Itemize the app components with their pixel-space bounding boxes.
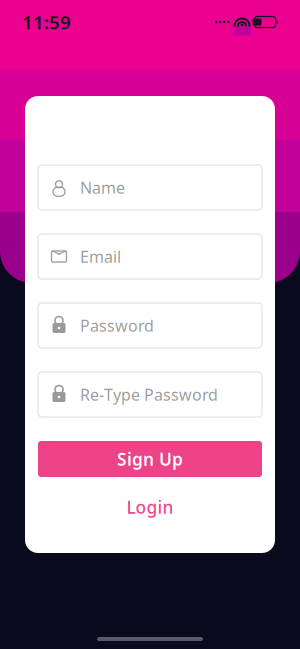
button[interactable]: Re-Type Password <box>38 372 262 417</box>
button[interactable]: Sign Up <box>38 441 262 477</box>
button[interactable]: Email <box>38 234 262 279</box>
staticText: Re-Type Password <box>80 384 218 405</box>
button[interactable]: Name <box>38 165 262 210</box>
staticText: Sign Up <box>117 447 183 470</box>
staticText: Name <box>80 177 125 198</box>
button[interactable]: Login <box>38 491 262 523</box>
button[interactable]: Password <box>38 303 262 348</box>
staticText: Login <box>126 495 173 518</box>
staticText: Password <box>80 315 154 336</box>
staticText: Email <box>80 246 121 267</box>
staticText: 11:59 <box>22 10 71 34</box>
